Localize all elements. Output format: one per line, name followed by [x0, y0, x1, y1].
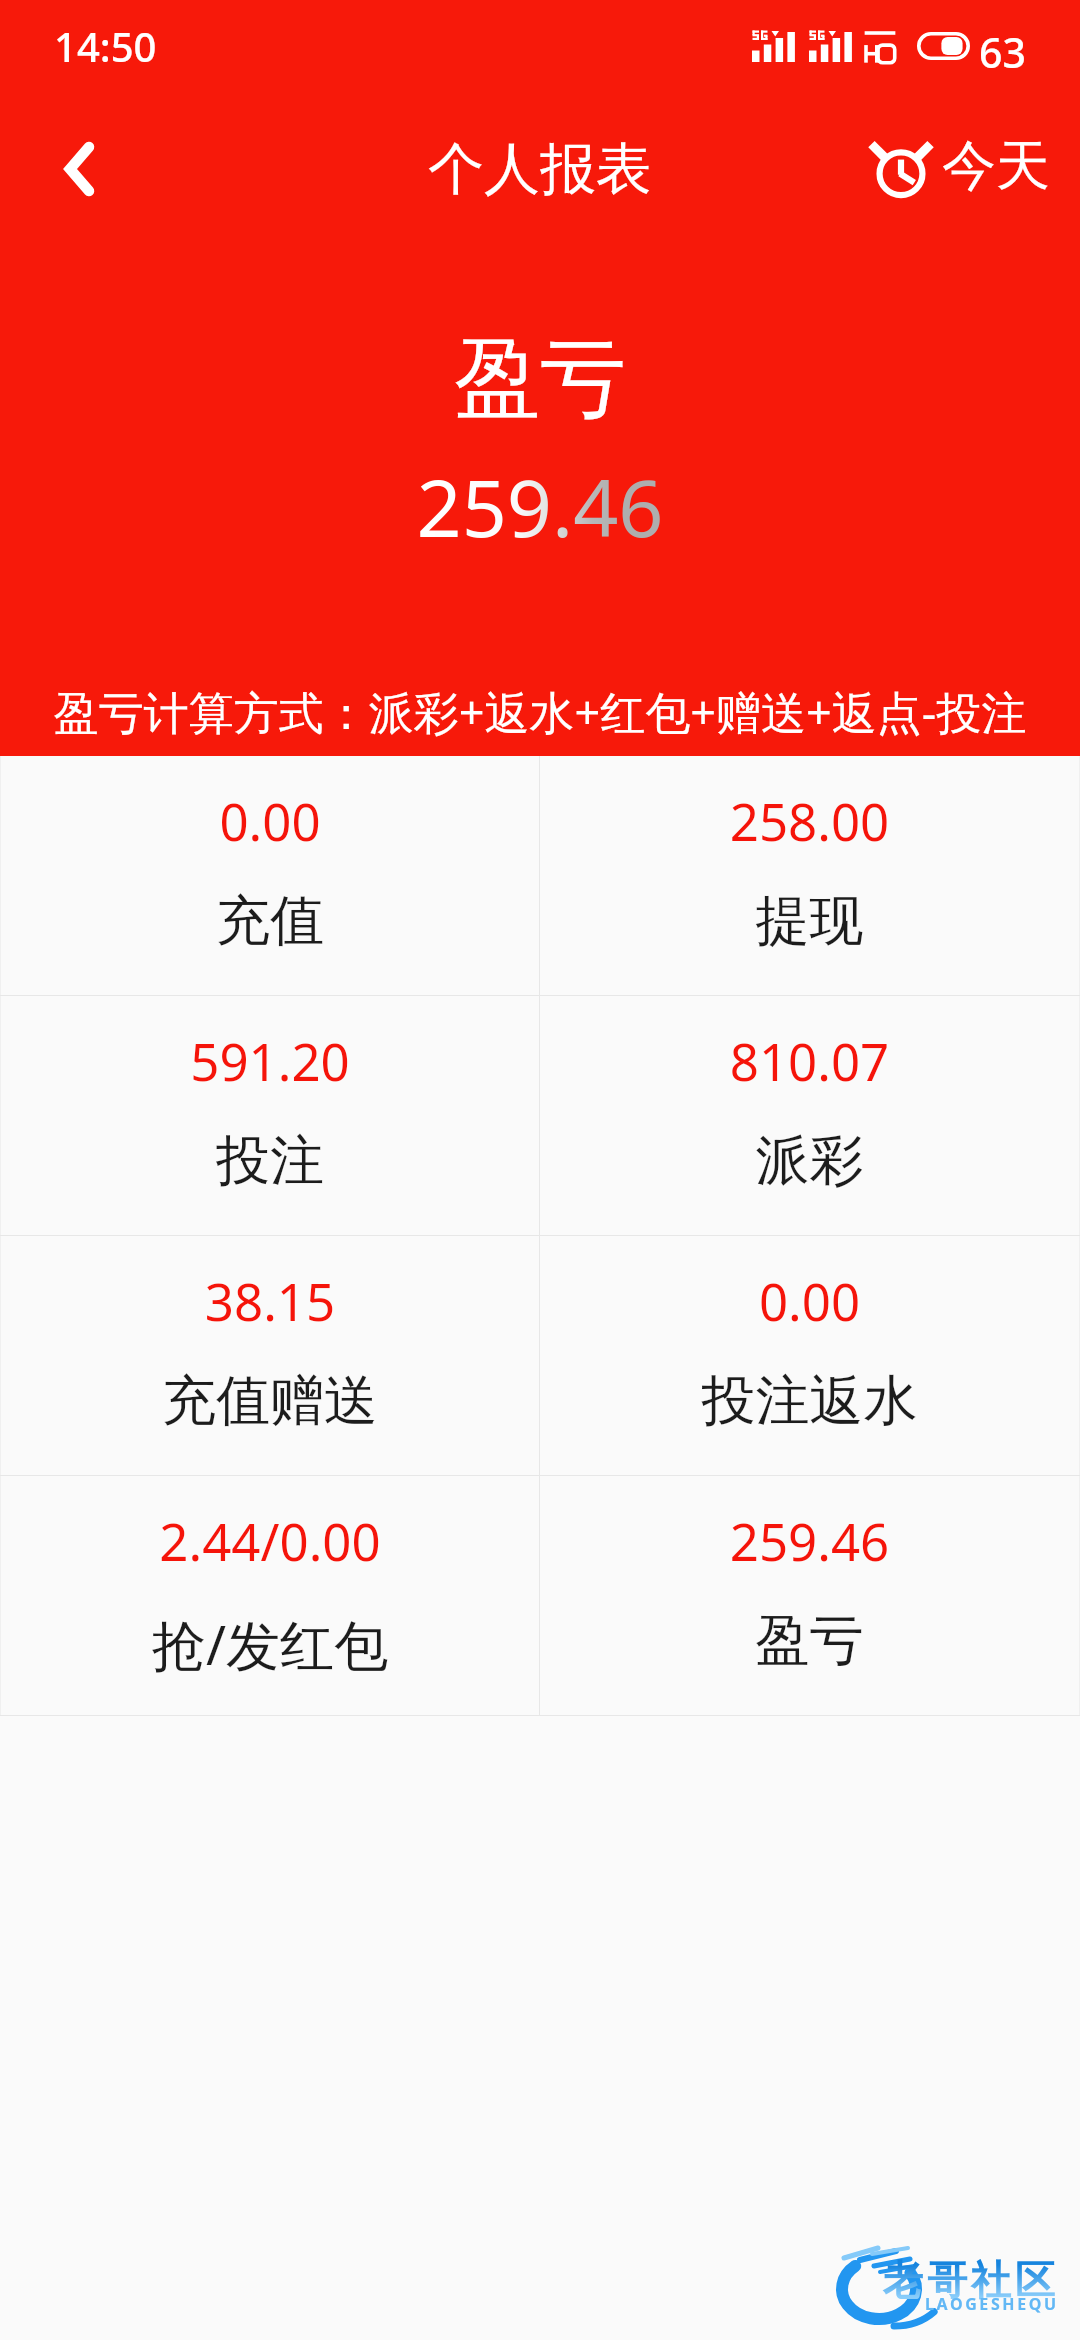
staticText: 盈亏 [540, 1607, 1079, 1675]
staticText: 38.15 [1, 1266, 539, 1335]
staticText: 投注 [1, 1127, 539, 1195]
staticText: 0.00 [540, 1266, 1079, 1335]
button[interactable]: 0.00 [1, 756, 539, 995]
staticText: 591.20 [1, 1026, 539, 1095]
staticText: 投注返水 [540, 1367, 1079, 1435]
staticText: 259.46 [540, 1506, 1079, 1575]
staticText: 2.44/0.00 [1, 1506, 539, 1575]
staticText: 充值赠送 [1, 1367, 539, 1435]
staticText: 盈亏计算方式：派彩+返水+红包+赠送+返点-投注 [0, 681, 1080, 742]
staticText: 今天 [942, 132, 1050, 200]
staticText: 盈亏 [0, 325, 1080, 433]
staticText: 259.46 [0, 453, 1080, 561]
button[interactable]: 591.20 [1, 996, 539, 1235]
button[interactable]: 259.46 [540, 1476, 1079, 1715]
button[interactable]: 810.07 [540, 996, 1079, 1235]
button[interactable]: 今天 [863, 125, 1056, 209]
button[interactable]: Back [24, 108, 134, 220]
staticText: 充值 [1, 887, 539, 955]
button[interactable]: 2.44/0.00 [1, 1476, 539, 1715]
button[interactable]: 38.15 [1, 1236, 539, 1475]
staticText: 抢/发红包 [1, 1607, 539, 1681]
staticText: 老哥社区 [881, 2255, 1057, 2305]
staticText: 258.00 [540, 786, 1079, 855]
staticText: LAOGESHEQU [925, 2293, 1059, 2315]
button[interactable]: 0.00 [540, 1236, 1079, 1475]
staticText: 派彩 [540, 1127, 1079, 1195]
staticText: 0.00 [1, 786, 539, 855]
staticText: 提现 [540, 887, 1079, 955]
button[interactable]: 258.00 [540, 756, 1079, 995]
staticText: 810.07 [540, 1026, 1079, 1095]
staticText: 个人报表 [0, 134, 1080, 205]
staticText: 63 [979, 24, 1026, 80]
staticText: 14:50 [54, 19, 157, 73]
